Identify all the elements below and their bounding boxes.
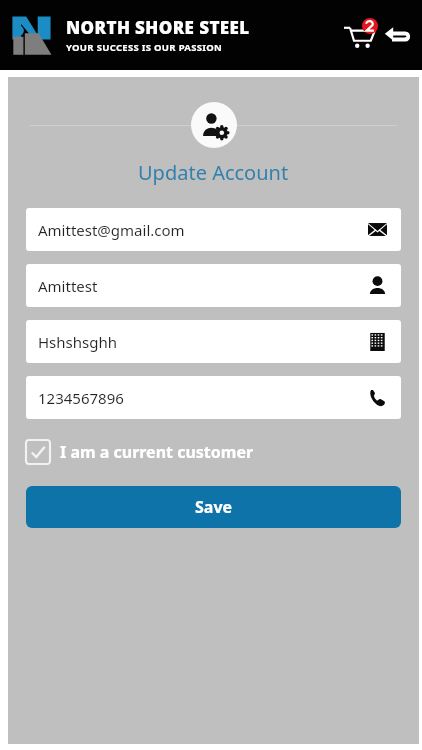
staticText: Update Account xyxy=(138,159,289,186)
button[interactable]: Save xyxy=(26,486,401,528)
staticText: YOUR SUCCESS IS OUR PASSION xyxy=(66,41,223,54)
button[interactable]: 1234567896 xyxy=(38,376,387,419)
staticText: 1234567896 xyxy=(38,388,368,408)
staticText: I am a current customer xyxy=(60,441,254,463)
button[interactable]: NORTH SHORE STEEL xyxy=(11,13,250,57)
staticText: NORTH SHORE STEEL xyxy=(66,16,250,39)
button[interactable]: Shopping cart, 2 items xyxy=(342,17,382,53)
staticText: Hshshsghh xyxy=(38,332,368,352)
button[interactable]: Amittest xyxy=(38,264,387,307)
staticText: Amittest xyxy=(38,276,368,296)
button[interactable]: Amittest@gmail.com xyxy=(38,208,387,251)
staticText: Amittest@gmail.com xyxy=(38,220,368,240)
button[interactable]: Back xyxy=(383,20,413,50)
button[interactable]: I am a current customer xyxy=(26,435,401,469)
staticText: Save xyxy=(195,496,233,518)
button[interactable]: Hshshsghh xyxy=(38,320,387,363)
